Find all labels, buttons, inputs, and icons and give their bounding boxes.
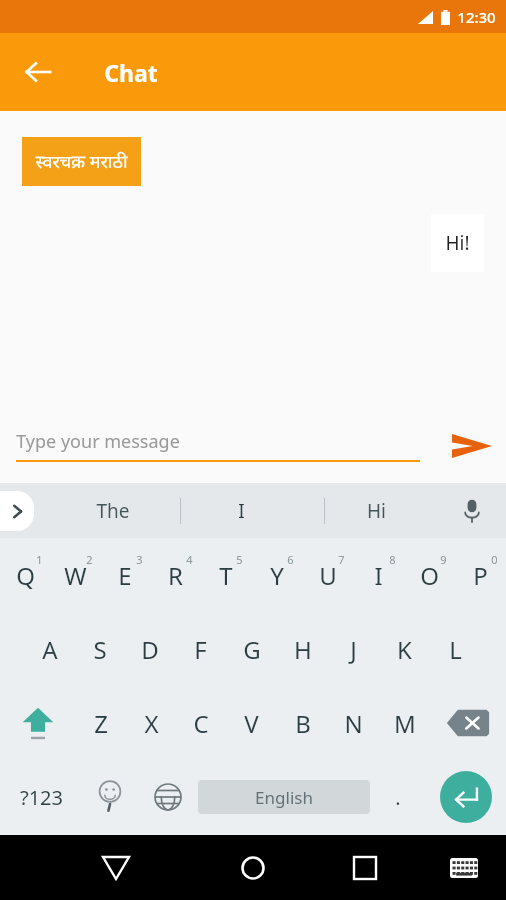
button[interactable]: Z xyxy=(76,686,126,760)
staticText: Hi xyxy=(367,498,386,524)
button[interactable]: V xyxy=(226,686,277,760)
staticText: स्वरचक्र मराठी xyxy=(35,149,128,174)
staticText: N xyxy=(344,707,363,740)
staticText: Y xyxy=(270,559,284,592)
button[interactable]: Q xyxy=(0,538,50,612)
staticText: 4 xyxy=(186,552,193,567)
button[interactable]: P xyxy=(455,538,506,612)
staticText: 2 xyxy=(86,552,93,567)
button[interactable]: . xyxy=(370,760,426,834)
button[interactable]: Hi! xyxy=(431,214,484,272)
staticText: English xyxy=(255,786,313,809)
button[interactable]: Shift xyxy=(0,686,76,760)
button[interactable]: G xyxy=(226,612,277,686)
button[interactable]: ?123 xyxy=(0,760,82,834)
button[interactable]: E xyxy=(100,538,150,612)
staticText: T xyxy=(219,559,233,592)
button[interactable]: Type your message xyxy=(16,429,420,462)
button[interactable]: Back xyxy=(12,46,64,98)
button[interactable]: X xyxy=(126,686,176,760)
staticText: 0 xyxy=(491,552,498,567)
staticText: I xyxy=(238,498,245,524)
button[interactable]: Recents xyxy=(339,842,391,894)
button[interactable]: S xyxy=(75,612,125,686)
button[interactable]: N xyxy=(328,686,379,760)
button[interactable]: Home xyxy=(227,842,279,894)
button[interactable]: R xyxy=(150,538,200,612)
button[interactable]: D xyxy=(125,612,175,686)
staticText: A xyxy=(42,633,58,666)
staticText: 6 xyxy=(287,552,294,567)
staticText: G xyxy=(243,633,261,666)
staticText: 3 xyxy=(136,552,143,567)
staticText: R xyxy=(168,559,183,592)
button[interactable]: Enter xyxy=(440,771,492,823)
button[interactable]: J xyxy=(328,612,379,686)
staticText: X xyxy=(144,707,159,740)
button[interactable]: The xyxy=(58,483,168,538)
button[interactable]: T xyxy=(200,538,251,612)
staticText: O xyxy=(420,559,439,592)
staticText: Z xyxy=(94,707,108,740)
button[interactable]: A xyxy=(25,612,75,686)
staticText: Type your message xyxy=(16,429,180,454)
button[interactable]: F xyxy=(175,612,226,686)
button[interactable]: B xyxy=(277,686,328,760)
button[interactable]: L xyxy=(430,612,481,686)
staticText: B xyxy=(295,707,311,740)
staticText: K xyxy=(397,633,412,666)
staticText: C xyxy=(193,707,209,740)
button[interactable]: Back xyxy=(90,842,142,894)
staticText: Chat xyxy=(104,57,158,88)
staticText: 7 xyxy=(338,552,345,567)
button[interactable]: H xyxy=(277,612,328,686)
staticText: W xyxy=(64,559,87,592)
staticText: U xyxy=(319,559,337,592)
staticText: ?123 xyxy=(20,784,63,811)
staticText: Q xyxy=(16,559,35,592)
staticText: 5 xyxy=(236,552,243,567)
staticText: V xyxy=(244,707,259,740)
button[interactable]: Send xyxy=(446,420,498,472)
staticText: J xyxy=(350,633,357,666)
staticText: 12:30 xyxy=(457,7,496,27)
staticText: 8 xyxy=(389,552,396,567)
button[interactable]: I xyxy=(353,538,404,612)
button[interactable]: K xyxy=(379,612,430,686)
staticText: . xyxy=(395,784,401,811)
staticText: Hi! xyxy=(445,230,470,256)
staticText: 9 xyxy=(440,552,447,567)
staticText: P xyxy=(473,559,488,592)
staticText: E xyxy=(118,559,132,592)
staticText: L xyxy=(449,633,462,666)
button[interactable]: C xyxy=(176,686,226,760)
button[interactable]: U xyxy=(302,538,353,612)
staticText: I xyxy=(374,559,383,592)
button[interactable]: I xyxy=(193,483,289,538)
button[interactable]: Y xyxy=(251,538,302,612)
button[interactable]: Change language xyxy=(138,760,198,834)
button[interactable]: Emoji xyxy=(82,760,138,834)
button[interactable]: O xyxy=(404,538,455,612)
button[interactable]: Expand suggestions xyxy=(0,491,34,531)
button[interactable]: M xyxy=(379,686,430,760)
button[interactable]: Hi xyxy=(328,483,424,538)
staticText: S xyxy=(93,633,107,666)
staticText: D xyxy=(141,633,159,666)
button[interactable]: Voice input xyxy=(450,489,494,533)
button[interactable]: W xyxy=(50,538,100,612)
staticText: M xyxy=(394,707,416,740)
staticText: F xyxy=(194,633,207,666)
button[interactable]: English xyxy=(198,780,370,814)
staticText: 1 xyxy=(36,552,43,567)
button[interactable]: Backspace xyxy=(430,686,506,760)
button[interactable]: Keyboard xyxy=(442,846,486,890)
staticText: H xyxy=(294,633,312,666)
staticText: The xyxy=(96,498,130,524)
button[interactable]: स्वरचक्र मराठी xyxy=(22,137,141,186)
